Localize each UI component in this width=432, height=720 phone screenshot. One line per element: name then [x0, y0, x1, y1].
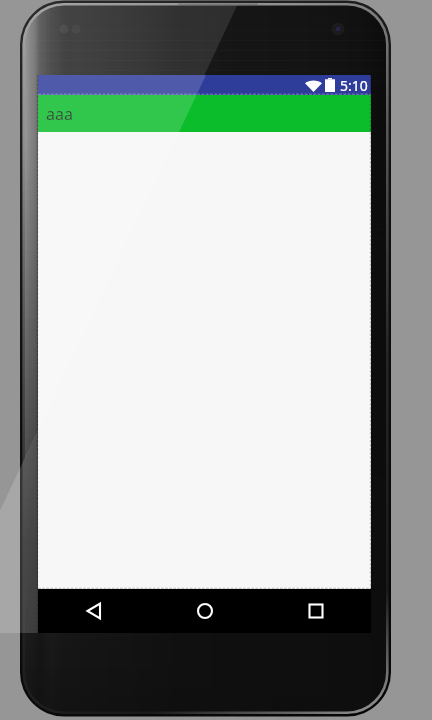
staticText: aaa	[46, 103, 73, 125]
button[interactable]: Back	[78, 595, 110, 627]
button[interactable]: Recent apps	[300, 595, 332, 627]
button[interactable]: Home	[189, 595, 221, 627]
button[interactable]: aaa	[38, 95, 371, 132]
staticText: 5:10	[340, 76, 368, 95]
